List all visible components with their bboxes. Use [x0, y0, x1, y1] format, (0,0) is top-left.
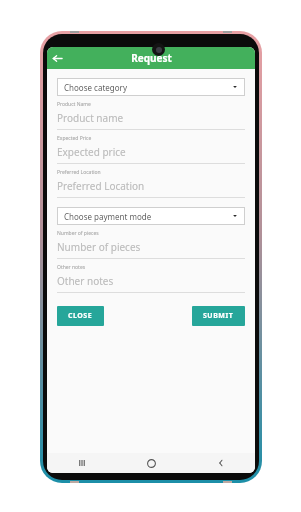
staticText: Expected Price — [57, 135, 92, 142]
staticText: Choose payment mode — [64, 211, 152, 222]
button[interactable]: SUBMIT — [192, 306, 245, 326]
button[interactable]: Expected Price — [57, 130, 245, 164]
staticText: Number of pieces — [57, 240, 141, 254]
button[interactable]: Other notes — [57, 259, 245, 293]
staticText: Product Name — [57, 101, 91, 108]
staticText: Preferred Location — [57, 179, 145, 193]
staticText: Choose category — [64, 82, 127, 93]
button[interactable]: Choose category — [57, 78, 245, 96]
button[interactable]: Preferred Location — [57, 164, 245, 198]
button[interactable]: Choose payment mode — [57, 207, 245, 225]
staticText: Number of pieces — [57, 230, 99, 237]
button[interactable]: CLOSE — [57, 306, 104, 326]
staticText: Preferred Location — [57, 169, 101, 176]
button[interactable]: Home — [117, 453, 186, 473]
staticText: Other notes — [57, 274, 114, 288]
button[interactable]: Back — [47, 48, 67, 68]
staticText: Other notes — [57, 264, 86, 271]
staticText: SUBMIT — [203, 311, 234, 321]
button[interactable]: Number of pieces — [57, 225, 245, 259]
staticText: Expected price — [57, 145, 126, 159]
staticText: Product name — [57, 111, 124, 125]
button[interactable]: Back — [186, 453, 255, 473]
staticText: Request — [131, 51, 172, 65]
staticText: CLOSE — [68, 311, 93, 321]
button[interactable]: Product Name — [57, 96, 245, 130]
button[interactable]: Recents — [47, 453, 117, 473]
